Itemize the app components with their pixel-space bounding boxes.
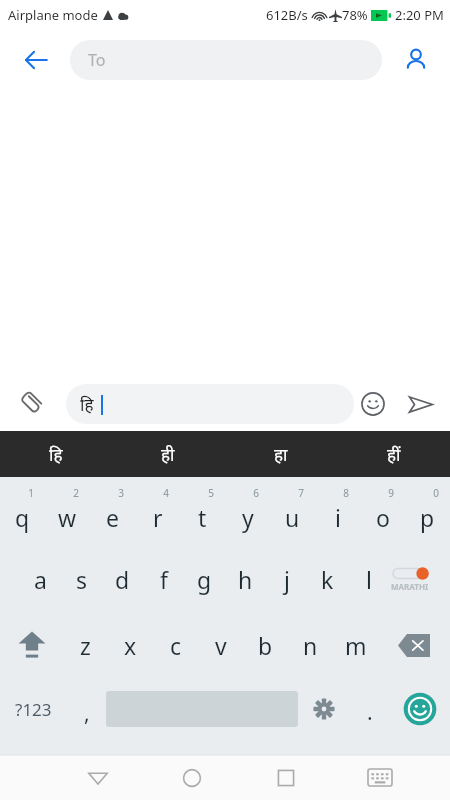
staticText: 2 [73, 486, 79, 500]
button[interactable]: s [61, 546, 102, 612]
staticText: q [15, 502, 30, 533]
button[interactable]: l [348, 546, 389, 612]
button[interactable]: Switch keyboard [333, 755, 427, 800]
staticText: 9 [388, 486, 394, 500]
staticText: g [197, 564, 212, 595]
staticText: ?123 [15, 698, 52, 721]
button[interactable]: z [63, 612, 108, 678]
button[interactable]: Shift [0, 612, 63, 678]
button[interactable]: 6 [225, 484, 270, 546]
button[interactable]: g [184, 546, 225, 612]
staticText: n [303, 630, 318, 661]
button[interactable]: Recents [239, 755, 333, 800]
staticText: . [367, 698, 373, 727]
staticText: 6 [253, 486, 259, 500]
button[interactable]: Emoji [354, 385, 392, 423]
staticText: MARATHI [391, 581, 429, 592]
staticText: 4 [163, 486, 169, 500]
button[interactable]: Emoji keyboard [389, 678, 450, 740]
staticText: l [366, 564, 372, 595]
staticText: 8 [343, 486, 349, 500]
staticText: w [58, 502, 77, 533]
button[interactable]: k [307, 546, 348, 612]
staticText: c [170, 630, 182, 661]
staticText: हा [274, 443, 288, 466]
button[interactable]: To [70, 40, 382, 80]
button[interactable]: h [225, 546, 266, 612]
button[interactable]: 1 [0, 484, 45, 546]
button[interactable]: ही [112, 431, 224, 477]
button[interactable]: c [153, 612, 198, 678]
staticText: हि [80, 393, 94, 416]
staticText: x [124, 630, 137, 661]
button[interactable]: Back [51, 755, 145, 800]
staticText: 5 [208, 486, 214, 500]
button[interactable]: ?123 [0, 678, 67, 740]
button[interactable]: v [198, 612, 243, 678]
staticText: y [242, 502, 254, 533]
staticText: To [88, 49, 106, 71]
staticText: u [285, 502, 300, 533]
staticText: 2:20 PM [395, 6, 444, 24]
staticText: t [198, 502, 207, 533]
staticText: p [420, 502, 435, 533]
button[interactable]: 2 [45, 484, 90, 546]
staticText: 1 [28, 486, 34, 500]
staticText: , [84, 699, 90, 728]
staticText: j [284, 564, 290, 595]
button[interactable]: हि [66, 384, 354, 424]
button[interactable]: Backspace [378, 612, 450, 678]
staticText: ही [161, 443, 175, 466]
button[interactable]: हि [0, 431, 112, 477]
button[interactable]: a [20, 546, 61, 612]
button[interactable]: Send [398, 382, 442, 426]
staticText: m [345, 630, 367, 661]
staticText: e [106, 502, 119, 533]
button[interactable]: n [288, 612, 333, 678]
staticText: r [153, 502, 163, 533]
staticText: Airplane mode [8, 6, 98, 24]
staticText: b [258, 630, 273, 661]
staticText: h [238, 564, 253, 595]
button[interactable]: Contacts [394, 38, 438, 82]
staticText: z [80, 630, 91, 661]
staticText: 612B/s [266, 6, 308, 24]
staticText: हि [49, 443, 63, 466]
staticText: d [115, 564, 130, 595]
button[interactable]: x [108, 612, 153, 678]
button[interactable]: d [102, 546, 143, 612]
button[interactable]: 3 [90, 484, 135, 546]
button[interactable]: 7 [270, 484, 315, 546]
button[interactable]: 4 [135, 484, 180, 546]
staticText: 7 [298, 486, 304, 500]
staticText: 0 [433, 486, 439, 500]
button[interactable]: b [243, 612, 288, 678]
button[interactable]: , [67, 678, 106, 740]
button[interactable]: हा [224, 431, 337, 477]
staticText: i [335, 502, 341, 533]
staticText: a [34, 564, 47, 595]
staticText: s [76, 564, 88, 595]
button[interactable]: Home [145, 755, 239, 800]
staticText: 78% [342, 6, 368, 24]
button[interactable]: Keyboard settings [298, 678, 350, 740]
button[interactable]: Back [14, 38, 58, 82]
button[interactable]: f [143, 546, 184, 612]
staticText: हीं [387, 443, 401, 466]
button[interactable]: हीं [337, 431, 450, 477]
button[interactable]: . [350, 678, 389, 740]
staticText: o [376, 502, 390, 533]
staticText: 3 [118, 486, 124, 500]
button[interactable]: Marathi language toggle [389, 546, 430, 612]
button[interactable]: m [333, 612, 378, 678]
button[interactable]: 8 [315, 484, 360, 546]
staticText: v [215, 630, 227, 661]
button[interactable]: Attach [10, 383, 52, 425]
button[interactable]: j [266, 546, 307, 612]
staticText: f [160, 564, 168, 595]
button[interactable]: 5 [180, 484, 225, 546]
button[interactable]: 0 [405, 484, 450, 546]
button[interactable]: 9 [360, 484, 405, 546]
staticText: k [321, 564, 334, 595]
